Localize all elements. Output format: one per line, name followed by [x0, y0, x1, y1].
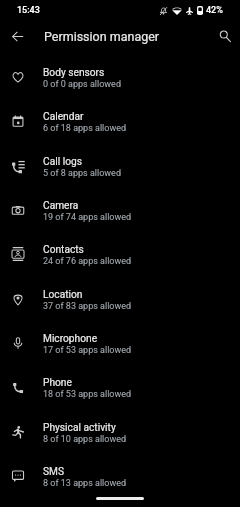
button[interactable]: Contacts: [0, 233, 240, 277]
staticText: 17 of 53 apps allowed: [43, 345, 132, 356]
staticText: SMS: [43, 466, 64, 478]
staticText: 5 of 8 apps allowed: [43, 168, 121, 179]
staticText: Physical activity: [43, 422, 116, 434]
button[interactable]: Location: [0, 278, 240, 322]
button[interactable]: SMS: [0, 455, 240, 499]
staticText: Camera: [43, 200, 79, 212]
staticText: Call logs: [43, 156, 82, 168]
staticText: 0 of 0 apps allowed: [43, 79, 121, 90]
button[interactable]: Microphone: [0, 322, 240, 366]
staticText: Microphone: [43, 333, 98, 345]
staticText: 6 of 18 apps allowed: [43, 123, 127, 134]
button[interactable]: Body sensors: [0, 56, 240, 100]
button[interactable]: Physical activity: [0, 411, 240, 455]
button[interactable]: Call logs: [0, 145, 240, 189]
button[interactable]: Camera: [0, 189, 240, 233]
staticText: 18 of 53 apps allowed: [43, 389, 132, 400]
button[interactable]: Calendar: [0, 100, 240, 144]
staticText: Phone: [43, 377, 72, 389]
button[interactable]: Search: [213, 24, 237, 48]
staticText: 24 of 76 apps allowed: [43, 256, 132, 267]
staticText: 15:43: [17, 5, 40, 16]
staticText: 19 of 74 apps allowed: [43, 212, 132, 223]
staticText: 37 of 83 apps allowed: [43, 301, 132, 312]
staticText: Body sensors: [43, 67, 105, 79]
staticText: 8 of 13 apps allowed: [43, 478, 127, 489]
button[interactable]: Phone: [0, 366, 240, 410]
staticText: 42%: [206, 5, 223, 16]
staticText: 8 of 10 apps allowed: [43, 434, 127, 445]
button[interactable]: Navigate up: [5, 24, 29, 48]
staticText: Permission manager: [44, 29, 160, 44]
staticText: Contacts: [43, 244, 84, 256]
staticText: Calendar: [43, 111, 84, 123]
staticText: Location: [43, 289, 83, 301]
